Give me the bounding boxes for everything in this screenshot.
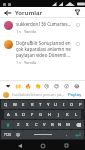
button[interactable]: U [52, 100, 60, 109]
button[interactable]: C [32, 120, 40, 129]
staticText: Paylaş [68, 92, 82, 98]
button[interactable]: Period [62, 130, 71, 139]
button[interactable]: Emoji [14, 82, 22, 90]
button[interactable]: F [28, 110, 36, 119]
button[interactable]: hodlakdo'ekani yorum yaz... [12, 92, 66, 98]
staticText: R [31, 102, 34, 108]
staticText: 😮 [64, 83, 70, 89]
button[interactable]: Y [44, 100, 52, 109]
staticText: M [66, 122, 70, 128]
staticText: T [39, 102, 42, 108]
staticText: I [63, 102, 65, 108]
button[interactable]: K [63, 110, 72, 119]
button[interactable]: Emoji [43, 82, 51, 90]
staticText: 🔥 [25, 83, 32, 89]
staticText: 🙌 [15, 83, 22, 89]
button[interactable]: DoğruBilir Sonuçlarınd en çok kaparalası… [0, 37, 85, 68]
button[interactable]: X [23, 120, 32, 129]
button[interactable]: Back [3, 8, 12, 17]
staticText: sukkerdon136 Cumartesi Yarınna Dönemsel [16, 21, 72, 27]
staticText: A [7, 112, 10, 118]
button[interactable]: Emoji [73, 82, 81, 90]
button[interactable]: Back [15, 141, 24, 150]
staticText: F [31, 112, 34, 118]
button[interactable]: R [28, 100, 36, 109]
button[interactable]: Symbols [1, 130, 14, 139]
button[interactable]: Emoji [24, 82, 32, 90]
staticText: 😍 [54, 83, 60, 89]
staticText: Y [47, 102, 50, 108]
staticText: hodlakdo'ekani yorum yaz... [12, 92, 66, 98]
button[interactable]: Emoji [34, 82, 42, 90]
button[interactable]: Paylaş [68, 92, 82, 98]
button[interactable]: Emoji [4, 82, 12, 90]
button[interactable]: Like [74, 21, 81, 28]
button[interactable]: Home [38, 141, 47, 150]
button[interactable]: A [4, 110, 12, 119]
staticText: G [39, 112, 43, 118]
button[interactable]: Emoji [14, 130, 23, 139]
button[interactable]: Emoji [63, 82, 71, 90]
staticText: 1 s [16, 29, 21, 34]
button[interactable]: O [68, 100, 76, 109]
staticText: C [35, 122, 38, 128]
staticText: ☺ [16, 132, 21, 137]
staticText: O [70, 102, 74, 108]
button[interactable]: V [40, 120, 48, 129]
staticText: 1 s [16, 60, 21, 65]
button[interactable]: G [36, 110, 45, 119]
button[interactable]: Shift [1, 120, 14, 129]
staticText: K [66, 112, 69, 118]
button[interactable]: Backspace [72, 120, 84, 129]
staticText: W [13, 102, 17, 108]
staticText: V [43, 122, 46, 128]
button[interactable]: sukkerdon136 Cumartesi Yarınna Dönemsel [0, 18, 85, 37]
button[interactable]: E [19, 100, 28, 109]
button[interactable]: I [60, 100, 68, 109]
staticText: 😢 [44, 83, 50, 89]
button[interactable]: P [76, 100, 84, 109]
button[interactable]: W [10, 100, 19, 109]
button[interactable]: H [45, 110, 54, 119]
button[interactable]: T [36, 100, 44, 109]
staticText: Q [4, 102, 8, 108]
staticText: P [79, 102, 82, 108]
button[interactable]: M [64, 120, 72, 129]
staticText: D [22, 112, 26, 118]
staticText: 😂 [74, 83, 80, 89]
button[interactable]: Emoji [53, 82, 61, 90]
button[interactable]: Z [14, 120, 23, 129]
button[interactable]: N [56, 120, 64, 129]
staticText: Yorumlar [15, 9, 43, 17]
staticText: B [51, 122, 54, 128]
staticText: Z [17, 122, 20, 128]
button[interactable]: D [20, 110, 28, 119]
staticText: Yanıtla [24, 29, 37, 34]
button[interactable]: L [72, 110, 81, 119]
button[interactable]: Q [1, 100, 10, 109]
staticText: J [58, 112, 60, 118]
button[interactable]: Like [74, 40, 81, 47]
button[interactable]: S [12, 110, 20, 119]
staticText: H [48, 112, 52, 118]
staticText: DoğruBilir Sonuçlarınd en çok kaparalası… [16, 40, 72, 58]
staticText: Yanıtla [24, 60, 37, 65]
staticText: X [26, 122, 29, 128]
staticText: E [22, 102, 25, 108]
button[interactable]: Filter [73, 8, 82, 17]
staticText: ?123 [4, 133, 11, 137]
staticText: ❤️ [6, 83, 11, 89]
staticText: S [15, 112, 18, 118]
staticText: N [58, 122, 62, 128]
staticText: 👏 [35, 83, 42, 89]
button[interactable]: Yanıtla [24, 29, 37, 34]
button[interactable]: Yanıtla [24, 60, 37, 65]
staticText: L [75, 112, 78, 118]
button[interactable]: Enter [71, 130, 84, 139]
button[interactable]: Space [23, 130, 62, 139]
staticText: U [54, 102, 58, 108]
button[interactable]: J [54, 110, 63, 119]
staticText: . [66, 132, 68, 137]
button[interactable]: B [48, 120, 56, 129]
button[interactable]: Recents [62, 141, 71, 150]
